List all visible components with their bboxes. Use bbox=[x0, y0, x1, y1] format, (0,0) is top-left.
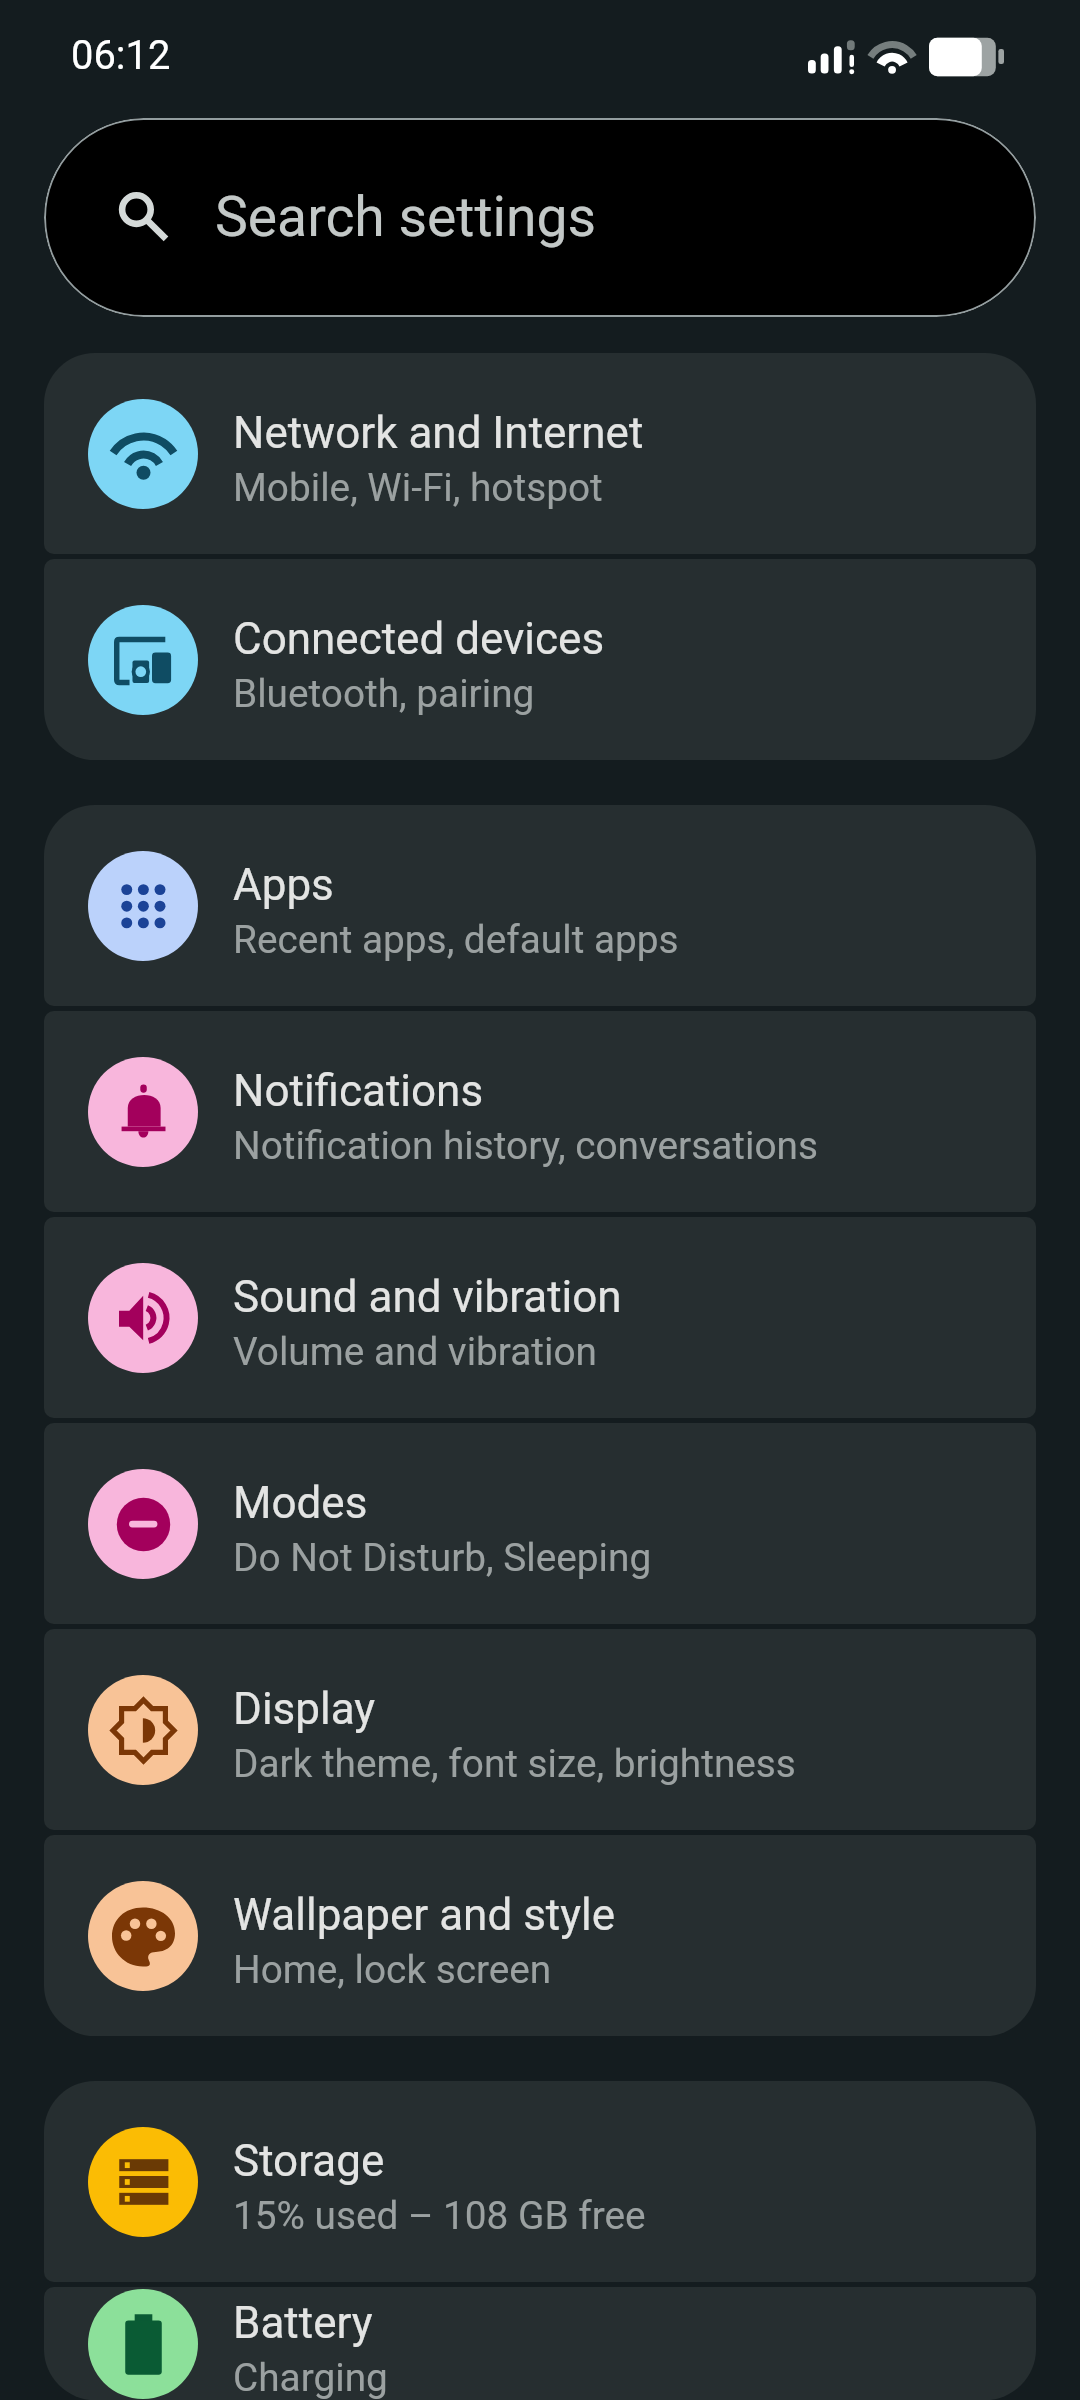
button[interactable]: Search settings bbox=[44, 118, 1036, 317]
button[interactable]: Display bbox=[44, 1629, 1036, 1830]
button[interactable]: Sound and vibration bbox=[44, 1217, 1036, 1418]
button[interactable]: Connected devices bbox=[44, 559, 1036, 760]
button[interactable]: Notifications bbox=[44, 1011, 1036, 1212]
staticText: Mobile, Wi-Fi, hotspot bbox=[233, 465, 603, 510]
staticText: Notification history, conversations bbox=[233, 1123, 818, 1168]
staticText: Battery bbox=[233, 2297, 373, 2349]
staticText: Search settings bbox=[215, 185, 596, 250]
staticText: 15% used – 108 GB free bbox=[233, 2193, 646, 2238]
staticText: Recent apps, default apps bbox=[233, 917, 679, 962]
staticText: Bluetooth, pairing bbox=[233, 671, 535, 716]
staticText: Wallpaper and style bbox=[233, 1889, 616, 1941]
staticText: 06:12 bbox=[71, 32, 171, 79]
button[interactable]: Apps bbox=[44, 805, 1036, 1006]
staticText: Charging bbox=[233, 2355, 388, 2400]
staticText: Dark theme, font size, brightness bbox=[233, 1741, 796, 1786]
staticText: Display bbox=[233, 1683, 376, 1735]
staticText: Modes bbox=[233, 1477, 368, 1529]
staticText: Apps bbox=[233, 859, 334, 911]
staticText: Do Not Disturb, Sleeping bbox=[233, 1535, 652, 1580]
button[interactable]: Modes bbox=[44, 1423, 1036, 1624]
button[interactable]: Network and Internet bbox=[44, 353, 1036, 554]
staticText: Home, lock screen bbox=[233, 1947, 552, 1992]
staticText: Network and Internet bbox=[233, 407, 644, 459]
staticText: Notifications bbox=[233, 1065, 484, 1117]
button[interactable]: Wallpaper and style bbox=[44, 1835, 1036, 2036]
staticText: Sound and vibration bbox=[233, 1271, 622, 1323]
staticText: Connected devices bbox=[233, 613, 605, 665]
staticText: Storage bbox=[233, 2135, 385, 2187]
staticText: Volume and vibration bbox=[233, 1329, 597, 1374]
button[interactable]: Storage bbox=[44, 2081, 1036, 2282]
button[interactable]: Battery bbox=[44, 2287, 1036, 2400]
